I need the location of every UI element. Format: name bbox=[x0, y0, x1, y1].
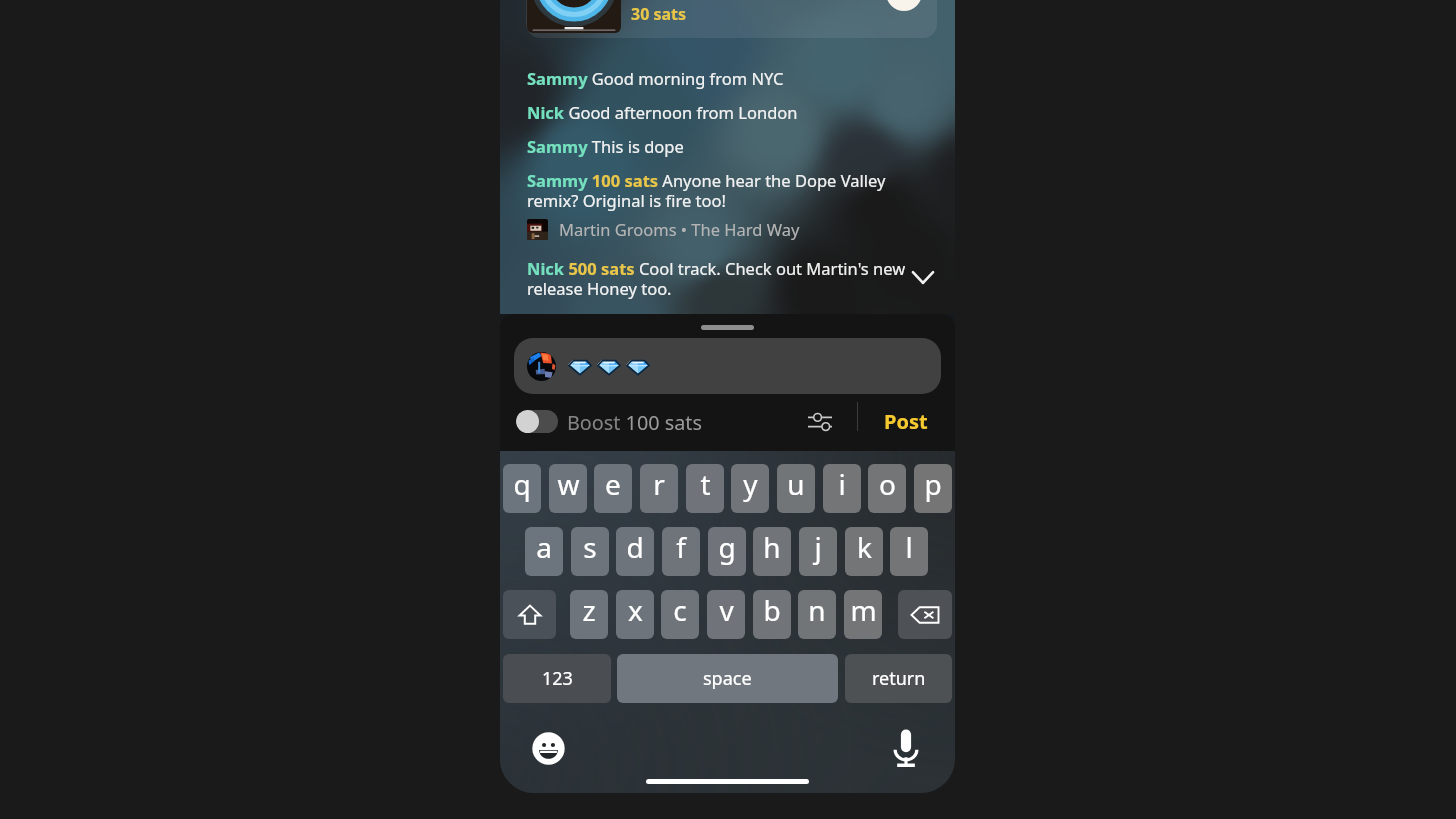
button[interactable]: j bbox=[799, 527, 837, 576]
button[interactable]: Sammy Good morning from NYC bbox=[527, 67, 927, 89]
staticText: c bbox=[673, 591, 687, 629]
button[interactable]: n bbox=[798, 590, 836, 639]
button[interactable]: h bbox=[753, 527, 791, 576]
staticText: g bbox=[718, 528, 736, 566]
button[interactable]: Shift bbox=[503, 590, 556, 639]
staticText: d bbox=[626, 528, 644, 566]
staticText: 30 sats bbox=[631, 3, 687, 25]
button[interactable]: Scroll to bottom bbox=[905, 262, 941, 298]
button[interactable]: Voice input bbox=[889, 727, 923, 769]
button[interactable]: m bbox=[844, 590, 882, 639]
button[interactable]: Martin Grooms • The Hard Way bbox=[527, 218, 800, 240]
staticText: s bbox=[583, 528, 597, 566]
button[interactable]: w bbox=[549, 464, 587, 513]
button[interactable]: p bbox=[914, 464, 952, 513]
button[interactable]: Settings bbox=[806, 408, 834, 436]
button[interactable]: c bbox=[661, 590, 699, 639]
staticText: Post bbox=[884, 408, 928, 435]
button[interactable]: e bbox=[594, 464, 632, 513]
button[interactable]: Backspace bbox=[898, 590, 952, 639]
staticText: space bbox=[703, 666, 752, 691]
staticText: q bbox=[513, 465, 531, 503]
button[interactable]: i bbox=[823, 464, 861, 513]
button[interactable]: Post bbox=[880, 404, 932, 439]
staticText: u bbox=[787, 465, 805, 503]
staticText: y bbox=[743, 465, 758, 503]
button[interactable]: Nick 500 sats Cool track. Check out Mart… bbox=[527, 257, 927, 300]
button[interactable]: q bbox=[503, 464, 541, 513]
button[interactable]: v bbox=[707, 590, 745, 639]
staticText: f bbox=[676, 528, 686, 566]
staticText: w bbox=[557, 465, 580, 503]
staticText: h bbox=[763, 528, 781, 566]
button[interactable]: k bbox=[845, 527, 883, 576]
staticText: 123 bbox=[542, 666, 573, 691]
staticText: j bbox=[814, 528, 822, 566]
button[interactable]: Sammy 100 sats Anyone hear the Dope Vall… bbox=[527, 169, 927, 212]
button[interactable]: Emoji bbox=[532, 732, 565, 765]
button[interactable]: Return bbox=[845, 654, 952, 703]
button[interactable]: l bbox=[890, 527, 928, 576]
button[interactable]: o bbox=[868, 464, 906, 513]
staticText: b bbox=[763, 591, 781, 629]
button[interactable] bbox=[514, 338, 941, 394]
button[interactable]: Space bbox=[617, 654, 838, 703]
staticText: e bbox=[605, 465, 621, 503]
button[interactable]: b bbox=[753, 590, 791, 639]
staticText: Martin Grooms • The Hard Way bbox=[559, 218, 800, 240]
button[interactable]: Numbers bbox=[503, 654, 611, 703]
button[interactable]: y bbox=[731, 464, 769, 513]
staticText: k bbox=[857, 528, 872, 566]
staticText: x bbox=[628, 591, 643, 629]
button[interactable]: Boost toggle bbox=[516, 410, 558, 433]
staticText: i bbox=[838, 465, 846, 503]
staticText: t bbox=[700, 465, 711, 503]
staticText: v bbox=[719, 591, 734, 629]
button[interactable]: 30 sats bbox=[526, 0, 937, 38]
button[interactable]: z bbox=[570, 590, 608, 639]
button[interactable]: x bbox=[616, 590, 654, 639]
button[interactable]: Play bbox=[886, 0, 922, 11]
button[interactable]: Sammy This is dope bbox=[527, 135, 927, 157]
button[interactable]: d bbox=[616, 527, 654, 576]
staticText: Boost 100 sats bbox=[567, 409, 702, 436]
staticText: n bbox=[808, 591, 826, 629]
button[interactable]: s bbox=[571, 527, 609, 576]
button[interactable]: u bbox=[777, 464, 815, 513]
button[interactable]: r bbox=[640, 464, 678, 513]
staticText: m bbox=[850, 591, 877, 629]
button[interactable]: a bbox=[525, 527, 563, 576]
button[interactable]: g bbox=[708, 527, 746, 576]
staticText: r bbox=[653, 465, 665, 503]
button[interactable]: Nick Good afternoon from London bbox=[527, 101, 927, 123]
staticText: a bbox=[536, 528, 552, 566]
button[interactable]: t bbox=[686, 464, 724, 513]
staticText: p bbox=[924, 465, 942, 503]
button[interactable]: f bbox=[662, 527, 700, 576]
staticText: l bbox=[905, 528, 913, 566]
staticText: return bbox=[872, 666, 926, 691]
staticText: z bbox=[582, 591, 596, 629]
staticText: o bbox=[879, 465, 896, 503]
